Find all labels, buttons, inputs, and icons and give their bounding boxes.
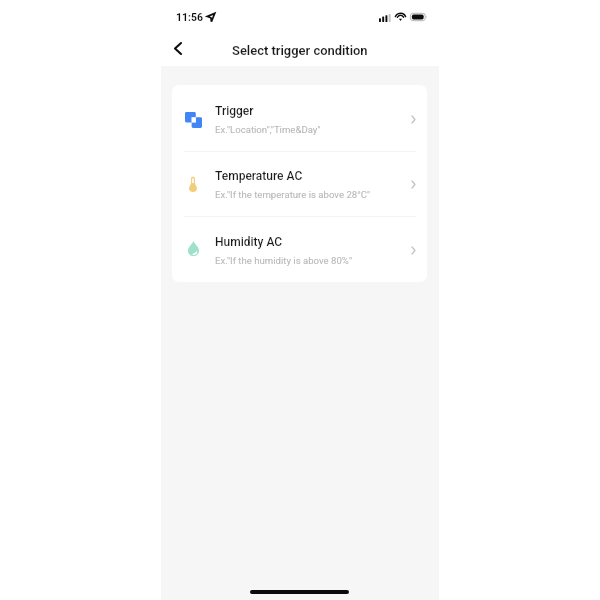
button[interactable]: Humidity AC bbox=[172, 216, 427, 281]
staticText: Select trigger condition bbox=[232, 43, 368, 58]
button[interactable]: Trigger bbox=[172, 85, 427, 150]
staticText: Humidity AC bbox=[215, 235, 283, 249]
button[interactable]: Back bbox=[163, 35, 191, 63]
staticText: Temperature AC bbox=[215, 169, 303, 183]
button[interactable]: Temperature AC bbox=[172, 150, 427, 215]
staticText: Trigger bbox=[215, 104, 254, 118]
staticText: Ex."If the humidity is above 80%" bbox=[215, 255, 352, 266]
staticText: Ex."If the temperature is above 28°C" bbox=[215, 189, 371, 200]
staticText: 11:56 bbox=[176, 11, 203, 23]
staticText: Ex."Location","Time&Day" bbox=[215, 124, 321, 135]
